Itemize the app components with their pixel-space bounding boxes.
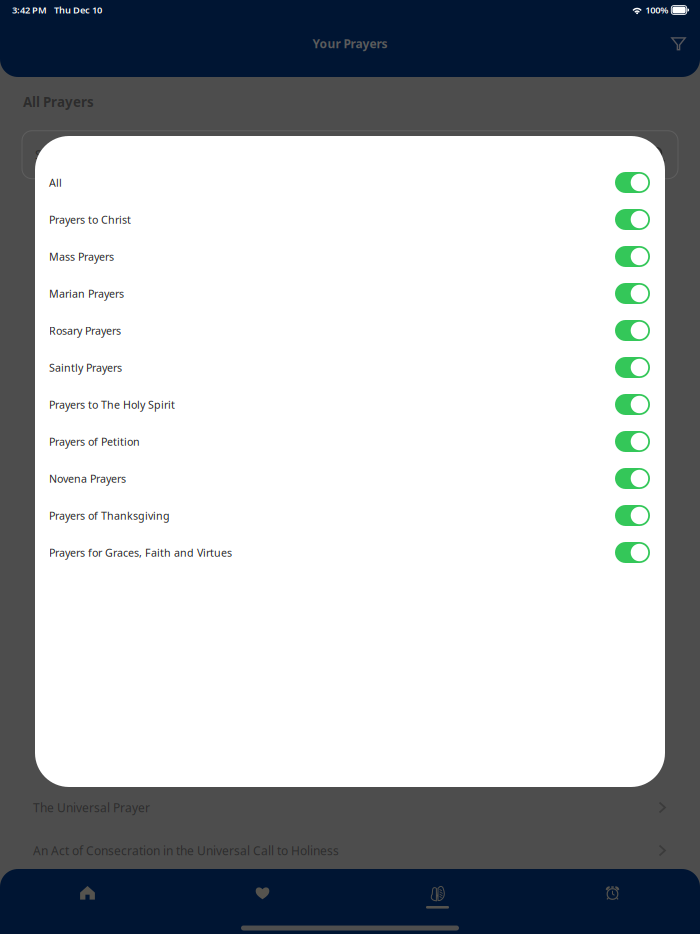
button[interactable]: Mass Prayers bbox=[35, 238, 665, 275]
button[interactable]: All bbox=[35, 164, 665, 201]
button[interactable]: Prayers to Christ bbox=[35, 201, 665, 238]
button[interactable]: Prayers of Petition bbox=[35, 423, 665, 460]
staticText: Search bbox=[35, 147, 74, 163]
staticText: Mass Prayers bbox=[49, 249, 114, 264]
staticText: Prayers of Thanksgiving bbox=[49, 508, 170, 523]
staticText: Rosary Prayers bbox=[49, 323, 121, 338]
button[interactable]: Prayers bbox=[426, 869, 449, 922]
staticText: Marian Prayers bbox=[49, 286, 124, 301]
button[interactable]: Rosary Prayers bbox=[35, 312, 665, 349]
staticText: All bbox=[49, 175, 62, 190]
button[interactable]: Marian Prayers bbox=[35, 275, 665, 312]
button[interactable]: Home bbox=[80, 869, 95, 922]
staticText: All Prayers bbox=[23, 93, 94, 111]
staticText: Prayers for Graces, Faith and Virtues bbox=[49, 545, 232, 560]
staticText: The Universal Prayer bbox=[33, 799, 150, 815]
button[interactable]: Prayers of Thanksgiving bbox=[35, 497, 665, 534]
button[interactable]: Saintly Prayers bbox=[35, 349, 665, 386]
button[interactable]: The Universal Prayer bbox=[0, 786, 700, 829]
staticText: 100% bbox=[645, 4, 668, 16]
button[interactable]: Favourites bbox=[255, 869, 270, 922]
button[interactable]: Prayers to The Holy Spirit bbox=[35, 386, 665, 423]
staticText: 3:42 PM bbox=[12, 4, 47, 16]
staticText: Prayers to The Holy Spirit bbox=[49, 397, 175, 412]
staticText: Prayers of Petition bbox=[49, 434, 140, 449]
staticText: Novena Prayers bbox=[49, 471, 126, 486]
button[interactable]: Prayers for Graces, Faith and Virtues bbox=[35, 534, 665, 571]
button[interactable]: Reminders bbox=[605, 869, 620, 922]
staticText: Saintly Prayers bbox=[49, 360, 122, 375]
button[interactable]: Filter bbox=[661, 27, 696, 59]
staticText: Your Prayers bbox=[312, 35, 387, 51]
button[interactable]: Search bbox=[22, 131, 678, 179]
button[interactable]: An Act of Consecration in the Universal … bbox=[0, 829, 700, 872]
button[interactable]: Novena Prayers bbox=[35, 460, 665, 497]
staticText: Thu Dec 10 bbox=[54, 4, 102, 16]
staticText: An Act of Consecration in the Universal … bbox=[33, 842, 339, 858]
staticText: Prayers to Christ bbox=[49, 212, 131, 227]
